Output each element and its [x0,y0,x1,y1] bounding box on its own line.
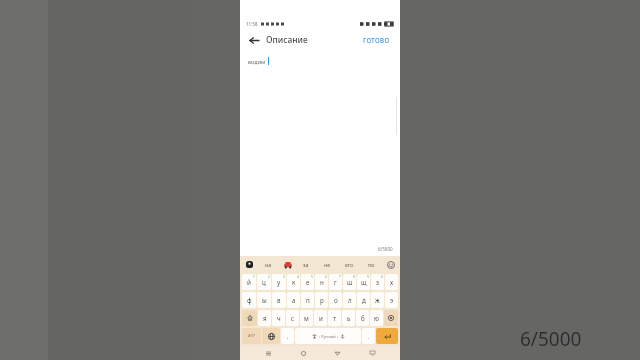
button[interactable]: и [314,310,327,326]
button[interactable]: Backspace [384,310,398,326]
button[interactable]: е [301,274,314,290]
staticText: м [304,314,309,322]
button[interactable]: Enter [376,328,398,344]
button[interactable]: ф [242,292,256,308]
button[interactable]: за [300,259,312,270]
button[interactable]: по [365,259,378,270]
staticText: Описание [266,34,308,46]
staticText: ф [247,296,252,304]
staticText: #1? [248,333,255,339]
staticText: 4 [297,275,299,279]
button[interactable]: н [315,274,328,290]
button[interactable]: у [272,274,286,290]
button[interactable]: Hide keyboard [366,347,378,359]
button[interactable]: д [357,292,370,308]
button[interactable]: Comma [281,328,294,344]
staticText: 11:58 [246,21,258,27]
staticText: р [320,296,324,304]
staticText: ю [374,314,379,322]
button[interactable]: Emoji [386,260,395,269]
button[interactable]: р [315,292,328,308]
staticText: . [368,333,370,340]
staticText: ж [375,296,380,304]
button[interactable]: Back [331,347,343,359]
button[interactable]: Space [295,328,361,344]
button[interactable]: к [287,274,300,290]
staticText: не [324,261,331,268]
button[interactable]: на [262,259,275,270]
button[interactable]: ш [343,274,356,290]
button[interactable]: Back [247,33,261,47]
button[interactable]: Change language [262,328,280,344]
button[interactable]: Home [297,347,309,359]
button[interactable]: б [356,310,369,326]
button[interactable]: в [272,292,286,308]
button[interactable]: о [329,292,342,308]
button[interactable]: Shift [242,310,257,326]
staticText: б [361,314,365,322]
staticText: х [390,278,394,286]
button[interactable]: не [321,259,334,270]
staticText: на [265,261,272,268]
button[interactable]: ю [370,310,383,326]
staticText: э [390,296,394,304]
staticText: 1 [253,275,255,279]
staticText: а [292,296,296,304]
staticText: ы [262,296,267,304]
staticText: н [320,278,324,286]
button[interactable]: м [300,310,313,326]
button[interactable]: а [287,292,300,308]
staticText: 6 [325,275,327,279]
button[interactable]: ц [257,274,271,290]
button[interactable]: его [342,259,357,270]
staticText: з [376,278,380,286]
staticText: щ [361,278,367,286]
staticText: 0 [381,275,383,279]
staticText: 2 [268,275,270,279]
staticText: 3 [283,275,285,279]
button[interactable]: ж [371,292,384,308]
staticText: ш [347,278,353,286]
button[interactable]: с [286,310,299,326]
staticText: о [334,296,338,304]
staticText: водим [248,58,266,65]
staticText: ч [277,314,281,322]
button[interactable]: Symbols [242,328,261,344]
button[interactable]: х [385,274,398,290]
button[interactable]: Period [362,328,375,344]
staticText: 6/5000 [520,326,582,352]
staticText: 7 [339,275,341,279]
button[interactable]: г [329,274,342,290]
staticText: й [247,278,251,286]
button[interactable]: Car emoji [283,260,292,269]
button[interactable]: щ [357,274,370,290]
staticText: г [334,278,337,286]
button[interactable]: ч [272,310,285,326]
button[interactable]: п [301,292,314,308]
button[interactable]: т [328,310,341,326]
staticText: я [263,314,267,322]
staticText: 8 [353,275,355,279]
button[interactable]: ы [257,292,271,308]
staticText: ГОТОВО [363,36,390,44]
staticText: ц [262,278,266,286]
button[interactable]: л [343,292,356,308]
button[interactable]: э [385,292,398,308]
staticText: т [333,314,336,322]
staticText: его [345,261,354,268]
button[interactable]: Assistant [245,260,254,269]
button[interactable]: й [242,274,256,290]
button[interactable]: ь [342,310,355,326]
button[interactable]: водим [240,51,400,256]
staticText: , [287,333,289,340]
button[interactable]: я [258,310,271,326]
button[interactable]: з [371,274,384,290]
staticText: ь [347,314,351,322]
staticText: у [277,278,281,286]
button[interactable]: ГОТОВО [360,34,393,46]
staticText: п [306,296,310,304]
button[interactable]: Recents [262,347,274,359]
staticText: по [368,261,375,268]
staticText: за [303,261,309,268]
staticText: и [319,314,323,322]
